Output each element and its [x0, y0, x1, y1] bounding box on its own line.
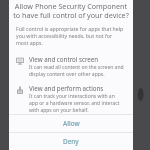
staticText: Full control is appropriate for apps tha…	[16, 25, 125, 46]
staticText: Allow	[63, 119, 80, 128]
button[interactable]: Allow	[9, 115, 133, 132]
button[interactable]: Actions	[15, 84, 125, 114]
staticText: Deny	[63, 137, 79, 146]
staticText: It can track your interactions with an a…	[29, 93, 125, 114]
staticText: View and control screen	[29, 55, 99, 63]
staticText: It can read all content on the screen an…	[29, 64, 125, 78]
other: Screen	[15, 56, 25, 66]
staticText: View and perform actions	[29, 84, 104, 92]
button[interactable]: Screen	[15, 55, 125, 78]
button[interactable]: Deny	[9, 133, 133, 150]
staticText: Allow Phone Security Component to have f…	[13, 1, 129, 20]
other: Actions	[15, 85, 25, 95]
